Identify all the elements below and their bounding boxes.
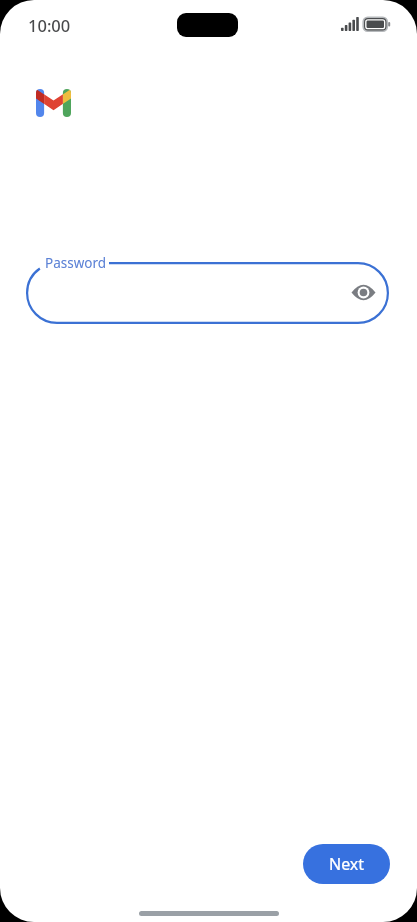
button[interactable]: Show password bbox=[347, 276, 380, 309]
button[interactable]: Next bbox=[303, 844, 390, 884]
staticText: Next bbox=[329, 853, 365, 875]
staticText: Password bbox=[45, 254, 107, 272]
button[interactable]: Password field bbox=[26, 262, 389, 324]
staticText: 10:00 bbox=[28, 14, 71, 36]
